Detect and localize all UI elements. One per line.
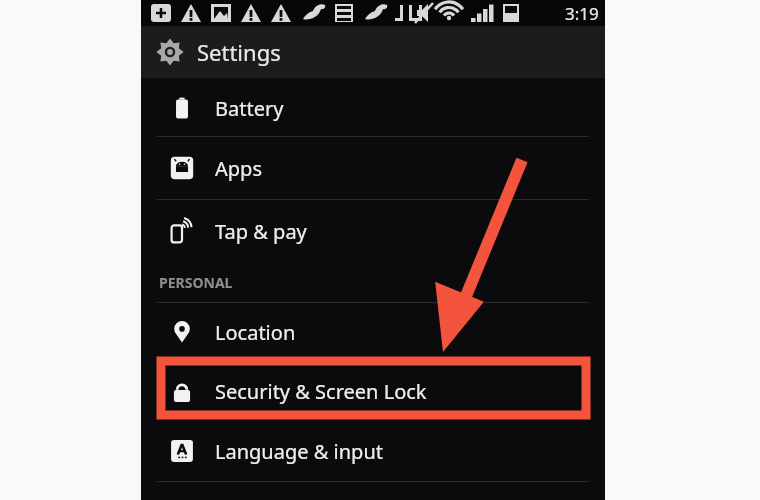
button[interactable]: Security & Screen Lock	[141, 361, 605, 421]
staticText: Language & input	[215, 438, 383, 465]
button[interactable]: Language & input	[141, 421, 605, 481]
button[interactable]: Location	[141, 303, 605, 361]
staticText: Security & Screen Lock	[215, 378, 427, 405]
button[interactable]	[157, 357, 590, 419]
button[interactable]: Battery	[141, 80, 605, 136]
staticText: Apps	[215, 155, 262, 182]
button[interactable]: Tap & pay	[141, 200, 605, 262]
button[interactable]: Apps	[141, 137, 605, 199]
staticText: 3:19	[565, 2, 599, 25]
staticText: Tap & pay	[215, 218, 307, 245]
staticText: Location	[215, 319, 296, 346]
staticText: PERSONAL	[159, 273, 233, 292]
staticText: Settings	[197, 37, 281, 67]
staticText: Battery	[215, 95, 284, 122]
button[interactable]: Settings	[141, 26, 605, 78]
other: Arrow pointing to Security & Screen Lock	[141, 0, 605, 500]
